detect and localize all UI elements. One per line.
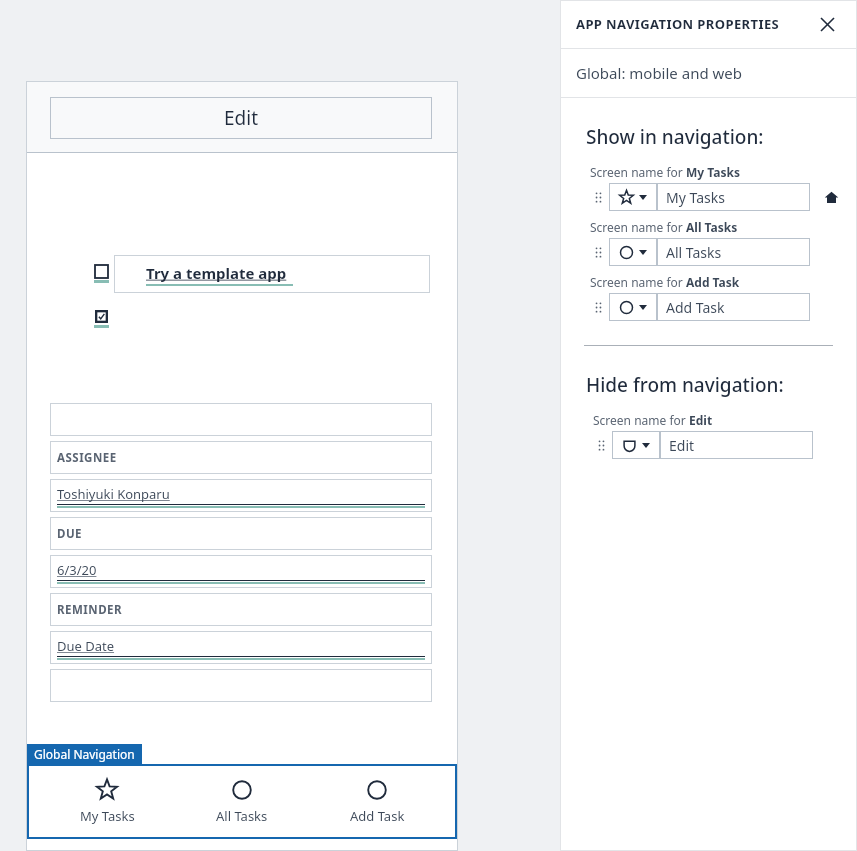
staticText: My Tasks (666, 188, 725, 207)
staticText: Toshiyuki Konparu (57, 485, 170, 503)
staticText: Add Task (666, 298, 725, 317)
button[interactable]: DUE (50, 517, 432, 550)
button[interactable]: Reorder Edit (593, 432, 609, 458)
button[interactable]: My Tasks (52, 779, 162, 825)
staticText: All Tasks (686, 219, 738, 235)
staticText: Global: mobile and web (576, 63, 743, 83)
staticText: DUE (57, 526, 83, 542)
button[interactable]: DONE (244, 770, 366, 806)
staticText: 6/3/20 (57, 561, 97, 579)
staticText: All Tasks (216, 807, 268, 825)
button[interactable]: All Tasks (657, 238, 810, 266)
staticText: Add Task (350, 807, 405, 825)
staticText: Global Navigation (34, 746, 135, 762)
staticText: REMINDER (57, 602, 123, 618)
staticText: Edit (669, 436, 695, 455)
staticText: All Tasks (666, 243, 722, 262)
button[interactable]: Icon for Add Task (609, 293, 657, 321)
staticText: Due Date (57, 637, 115, 655)
button[interactable]: Toshiyuki Konparu (50, 479, 432, 512)
staticText: My Tasks (686, 164, 740, 180)
button[interactable]: 6/3/20 (50, 555, 432, 588)
button[interactable]: Icon for My Tasks (609, 183, 657, 211)
button[interactable]: Add Task (322, 779, 432, 825)
button[interactable]: Icon for Edit (612, 431, 660, 459)
staticText: Edit (224, 105, 259, 131)
button[interactable]: Icon for All Tasks (609, 238, 657, 266)
button[interactable]: Edit (660, 431, 813, 459)
staticText: Edit (689, 412, 713, 428)
button[interactable]: Reorder My Tasks (590, 184, 606, 210)
button[interactable]: DELETE (50, 771, 220, 805)
staticText: Screen name for (590, 274, 686, 290)
button[interactable]: Add Task (657, 293, 810, 321)
staticText: Try a template app (146, 263, 287, 283)
button[interactable]: All Tasks (187, 779, 297, 825)
button[interactable]: REMINDER (50, 593, 432, 626)
button[interactable]: Try a template app (114, 255, 430, 293)
staticText: DELETE (109, 779, 162, 798)
button[interactable] (50, 669, 432, 702)
staticText: Show in navigation: (586, 124, 764, 150)
staticText: Hide from navigation: (586, 372, 784, 398)
button[interactable]: Due Date (50, 631, 432, 664)
staticText: Screen name for (590, 164, 686, 180)
button[interactable] (50, 403, 432, 436)
button[interactable]: Home screen (820, 186, 842, 208)
button[interactable]: My Tasks (657, 183, 810, 211)
staticText: My Tasks (80, 807, 135, 825)
button[interactable]: Reorder All Tasks (590, 239, 606, 265)
button[interactable]: Edit (50, 97, 432, 139)
staticText: Add Task (686, 274, 740, 290)
staticText: ASSIGNEE (57, 450, 117, 466)
button[interactable]: Reorder Add Task (590, 294, 606, 320)
button[interactable]: Close (813, 10, 841, 38)
staticText: Screen name for (590, 219, 686, 235)
button[interactable]: ASSIGNEE (50, 441, 432, 474)
staticText: APP NAVIGATION PROPERTIES (576, 15, 780, 33)
staticText: Screen name for (593, 412, 689, 428)
